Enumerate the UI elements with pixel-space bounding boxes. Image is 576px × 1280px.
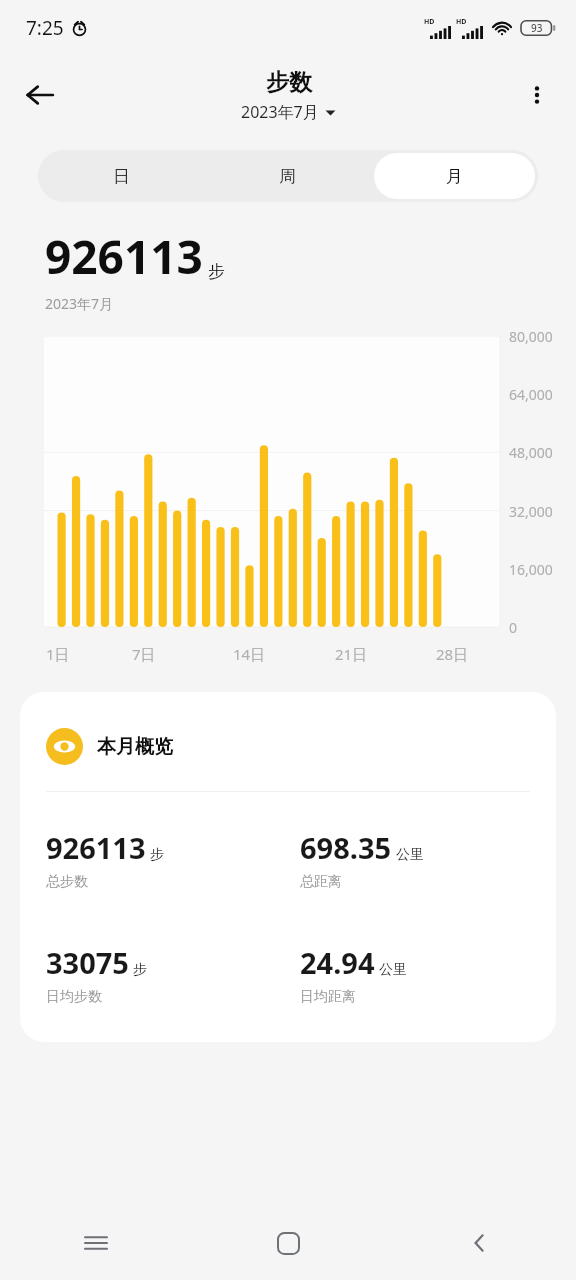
staticText: 步 [208, 261, 225, 282]
staticText: 14日 [233, 644, 266, 664]
button[interactable]: Back [384, 1206, 576, 1280]
button[interactable]: More options [512, 70, 562, 120]
staticText: 21日 [335, 644, 368, 664]
staticText: 80,000 [509, 327, 553, 346]
staticText: 公里 [396, 846, 424, 864]
staticText: HD [456, 17, 467, 27]
staticText: 总步数 [46, 873, 88, 891]
button[interactable]: 周 [207, 153, 368, 199]
staticText: HD [424, 17, 435, 27]
staticText: 本月概览 [97, 735, 173, 759]
staticText: 926113 [46, 828, 146, 867]
button[interactable]: 日 [41, 153, 201, 199]
staticText: 日 [113, 166, 130, 187]
button[interactable]: Back [14, 69, 66, 121]
staticText: 48,000 [509, 443, 553, 462]
staticText: 93 [531, 21, 543, 35]
staticText: 16,000 [509, 560, 553, 579]
staticText: 日均距离 [300, 988, 356, 1006]
button[interactable]: Recent apps [0, 1206, 192, 1280]
staticText: 2023年7月 [45, 294, 114, 313]
staticText: 7日 [132, 644, 156, 664]
button[interactable]: 月 [374, 153, 535, 199]
staticText: 64,000 [509, 385, 553, 404]
staticText: 28日 [436, 644, 469, 664]
staticText: 2023年7月 [241, 101, 319, 123]
staticText: 7:25 [26, 15, 64, 41]
staticText: 926113 [45, 225, 203, 288]
button[interactable]: 2023年7月 [241, 101, 336, 123]
staticText: 698.35 [300, 828, 392, 867]
staticText: 32,000 [509, 502, 553, 521]
button[interactable]: Home [192, 1206, 384, 1280]
staticText: 33075 [46, 943, 129, 982]
staticText: 步 [133, 961, 147, 979]
staticText: 1日 [46, 644, 70, 664]
staticText: 步数 [266, 68, 312, 97]
staticText: 总距离 [300, 873, 342, 891]
staticText: 0 [509, 618, 518, 637]
staticText: 月 [446, 166, 463, 187]
button[interactable]: 本月概览 [20, 692, 556, 1042]
staticText: 24.94 [300, 943, 375, 982]
staticText: 公里 [379, 961, 407, 979]
staticText: 日均步数 [46, 988, 102, 1006]
staticText: 步 [150, 846, 164, 864]
staticText: 周 [279, 166, 296, 187]
